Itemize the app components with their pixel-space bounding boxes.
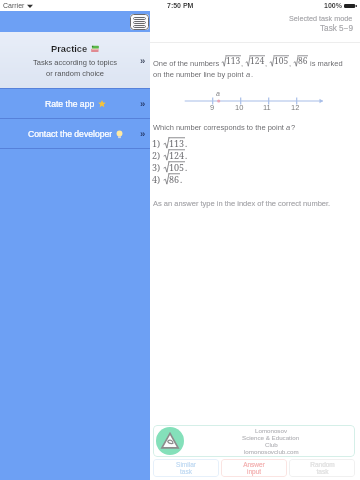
staticText: 9 xyxy=(210,103,215,111)
staticText: . xyxy=(185,149,188,161)
staticText: One of the numbers xyxy=(153,59,222,67)
staticText: . xyxy=(185,137,188,149)
button[interactable]: Contact the developer xyxy=(0,119,150,148)
staticText: lomonosovclub.com xyxy=(244,448,299,455)
staticText: a xyxy=(246,70,251,78)
staticText: 113 xyxy=(226,55,241,67)
staticText: is marked xyxy=(308,59,343,67)
staticText: 124 xyxy=(250,55,265,67)
staticText: 12 xyxy=(291,103,300,111)
staticText: » xyxy=(140,98,146,109)
staticText: 105 xyxy=(169,161,185,173)
staticText: 2) xyxy=(152,149,161,161)
staticText: , xyxy=(241,59,246,67)
button[interactable]: Answer input xyxy=(221,459,287,477)
staticText: Selected task mode xyxy=(289,14,353,22)
staticText: 86 xyxy=(298,55,308,67)
staticText: Similar task xyxy=(176,461,196,476)
staticText: Practice xyxy=(51,44,88,54)
staticText: » xyxy=(140,128,146,139)
staticText: Task 5−9 xyxy=(320,24,353,33)
staticText: Lomonosov xyxy=(255,427,287,434)
staticText: Contact the developer xyxy=(28,129,113,139)
staticText: , xyxy=(289,59,294,67)
staticText: Answer input xyxy=(243,461,265,476)
staticText: Random task xyxy=(310,461,335,476)
staticText: 10 xyxy=(235,103,244,111)
staticText: 105 xyxy=(274,55,289,67)
staticText: Carrier xyxy=(3,2,25,10)
button[interactable]: Random task xyxy=(289,459,355,477)
staticText: Science & Education xyxy=(242,434,300,441)
staticText: Club xyxy=(265,441,278,448)
staticText: ? xyxy=(291,123,296,131)
button[interactable]: Menu xyxy=(130,14,149,30)
button[interactable]: Rate the app xyxy=(0,89,150,118)
staticText: . xyxy=(180,173,183,185)
staticText: Which number corresponds to the point xyxy=(153,123,286,131)
staticText: 11 xyxy=(263,103,271,111)
staticText: on the number line by point xyxy=(153,70,246,78)
staticText: As an answer type in the index of the co… xyxy=(153,199,331,207)
staticText: 3) xyxy=(152,161,161,173)
staticText: 4) xyxy=(152,173,161,185)
staticText: 113 xyxy=(169,137,185,149)
staticText: 7:50 PM xyxy=(167,2,194,10)
staticText: 124 xyxy=(169,149,185,161)
staticText: Rate the app xyxy=(45,99,95,109)
staticText: 1) xyxy=(152,137,161,149)
staticText: Tasks according to topics or random choi… xyxy=(33,58,117,77)
staticText: 86 xyxy=(169,173,180,185)
staticText: , xyxy=(265,59,270,67)
staticText: 100% xyxy=(324,2,342,10)
staticText: » xyxy=(140,55,146,66)
button[interactable]: Practice xyxy=(0,32,150,88)
staticText: . xyxy=(251,70,254,78)
staticText: a xyxy=(286,123,291,131)
staticText: a xyxy=(216,90,220,98)
button[interactable]: Similar task xyxy=(153,459,219,477)
staticText: . xyxy=(185,161,188,173)
